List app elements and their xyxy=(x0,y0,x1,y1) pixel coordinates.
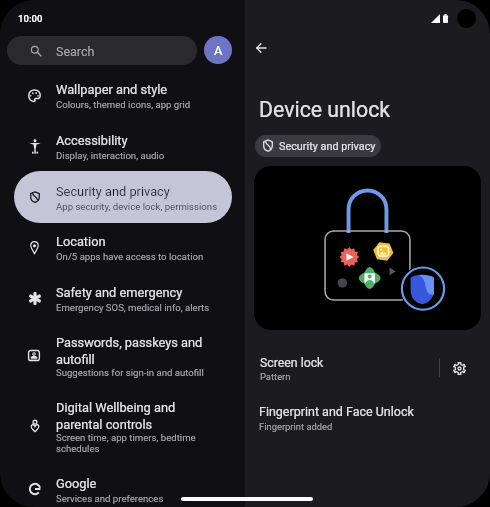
staticText: Digital Wellbeing and xyxy=(56,400,176,415)
staticText: Location xyxy=(56,234,106,249)
staticText: Google xyxy=(56,476,97,491)
staticText: Search xyxy=(56,44,95,59)
staticText: Services and preferences xyxy=(56,493,164,504)
staticText: Device unlock xyxy=(259,97,391,122)
button[interactable]: Account xyxy=(204,36,232,64)
button[interactable] xyxy=(13,463,231,507)
button[interactable] xyxy=(13,272,231,324)
staticText: parental controls xyxy=(56,417,153,432)
staticText: Screen lock xyxy=(260,356,324,370)
staticText: Safety and emergency xyxy=(56,285,183,300)
staticText: Security and privacy xyxy=(279,140,376,153)
staticText: Fingerprint added xyxy=(259,421,333,432)
button[interactable]: Screen lock settings xyxy=(442,351,476,385)
staticText: Fingerprint and Face Unlock xyxy=(259,404,414,419)
staticText: Colours, themed icons, app grid xyxy=(56,99,191,110)
staticText: Accessibility xyxy=(56,133,128,148)
staticText: Screen time, app timers, bedtime xyxy=(56,432,196,443)
button[interactable] xyxy=(245,347,490,389)
button[interactable] xyxy=(13,330,231,382)
staticText: Pattern xyxy=(260,371,291,382)
button[interactable] xyxy=(13,400,231,452)
staticText: Wallpaper and style xyxy=(56,82,168,97)
button[interactable] xyxy=(13,221,231,273)
button[interactable]: Search xyxy=(7,36,197,65)
button[interactable]: Security and privacy xyxy=(255,135,381,157)
staticText: Display, interaction, audio xyxy=(56,150,165,161)
button[interactable] xyxy=(245,398,490,438)
staticText: Passwords, passkeys and xyxy=(56,335,203,350)
staticText: A xyxy=(214,43,223,58)
staticText: Emergency SOS, medical info, alerts xyxy=(56,302,210,313)
staticText: On/5 apps have access to location xyxy=(56,251,204,262)
staticText: App security, device lock, permissions xyxy=(56,201,218,212)
button[interactable] xyxy=(13,70,231,122)
button[interactable] xyxy=(13,120,231,172)
button[interactable] xyxy=(13,171,231,223)
staticText: 10:00 xyxy=(18,13,43,24)
staticText: schedules xyxy=(56,443,100,454)
staticText: Suggestions for sign-in and autofill xyxy=(56,367,204,378)
button[interactable]: Back xyxy=(244,31,278,65)
staticText: Security and privacy xyxy=(56,184,170,199)
staticText: autofill xyxy=(56,352,95,367)
